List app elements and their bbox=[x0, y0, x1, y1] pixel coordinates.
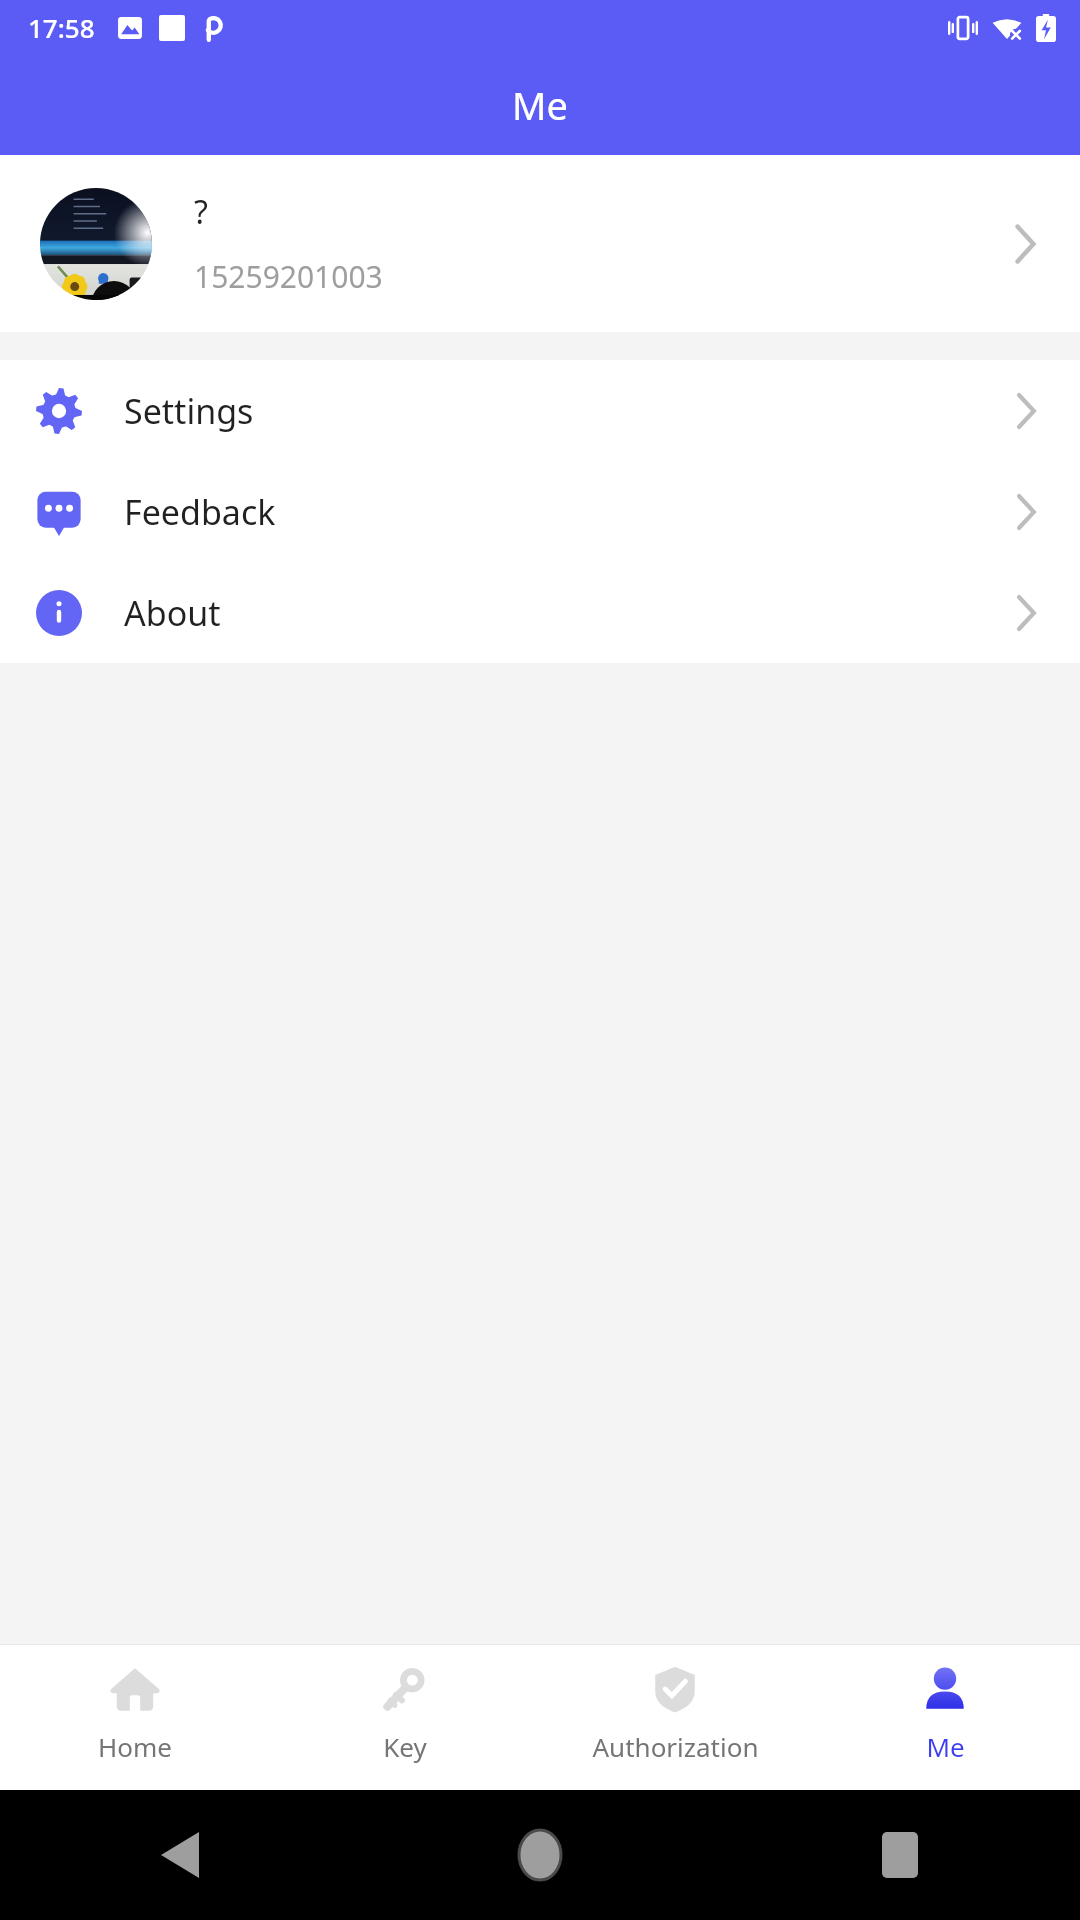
staticText: Home bbox=[98, 1729, 172, 1764]
staticText: ? bbox=[194, 190, 208, 234]
staticText: Me bbox=[926, 1729, 965, 1764]
button[interactable]: Recent apps bbox=[865, 1820, 935, 1890]
button[interactable]: Feedback bbox=[0, 461, 1080, 562]
staticText: 17:58 bbox=[28, 10, 95, 45]
staticText: Key bbox=[383, 1729, 427, 1764]
staticText: Settings bbox=[124, 388, 1012, 434]
button[interactable]: Key bbox=[270, 1645, 540, 1790]
button[interactable]: Back bbox=[145, 1820, 215, 1890]
button[interactable]: Settings bbox=[0, 360, 1080, 461]
button[interactable]: Home bbox=[505, 1820, 575, 1890]
staticText: Authorization bbox=[592, 1729, 759, 1764]
button[interactable]: About bbox=[0, 562, 1080, 663]
button[interactable]: Authorization bbox=[540, 1645, 810, 1790]
staticText: About bbox=[124, 590, 1012, 636]
button[interactable]: ? bbox=[0, 155, 1080, 332]
button[interactable]: Me bbox=[810, 1645, 1080, 1790]
staticText: Feedback bbox=[124, 489, 1012, 535]
staticText: 15259201003 bbox=[194, 256, 383, 297]
staticText: Me bbox=[512, 79, 568, 131]
button[interactable]: Home bbox=[0, 1645, 270, 1790]
